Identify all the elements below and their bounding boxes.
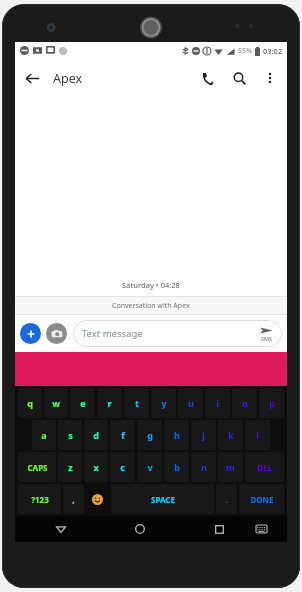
staticText: 55% [238,46,252,56]
button[interactable]: o [232,388,257,418]
staticText: 03:02 [263,46,283,56]
staticText: e [80,397,86,409]
staticText: j [202,429,205,441]
button[interactable]: SPACE [111,484,214,514]
staticText: ?123 [31,494,49,505]
staticText: z [68,461,73,473]
staticText: x [93,461,99,473]
button[interactable]: t [124,388,149,418]
button[interactable]: g [137,420,162,450]
button[interactable]: w [44,388,68,418]
button[interactable]: DEL [245,452,284,482]
staticText: p [269,397,275,409]
button[interactable]: a [32,420,56,450]
staticText: o [242,397,248,409]
staticText: c [120,461,125,473]
button[interactable]: Switch keyboard [249,517,273,541]
staticText: v [147,461,153,473]
button[interactable]: p [259,388,284,418]
button[interactable]: Home [128,517,152,541]
button[interactable]: m [218,452,243,482]
staticText: b [174,461,180,473]
staticText: n [201,461,207,473]
button[interactable]: x [84,452,108,482]
button[interactable]: h [164,420,189,450]
staticText: r [107,397,112,409]
staticText: k [228,429,234,441]
staticText: y [161,397,167,409]
staticText: Saturday • 04:28 [122,280,180,290]
button[interactable]: l [245,420,270,450]
staticText: . [225,493,228,505]
button[interactable]: ?123 [18,484,61,514]
staticText: SPACE [151,494,175,505]
button[interactable]: CAPS [18,452,56,482]
button[interactable]: . [216,484,237,514]
staticText: SMS [261,335,273,342]
button[interactable]: v [137,452,162,482]
button[interactable]: f [110,420,135,450]
staticText: l [256,429,259,441]
staticText: s [68,429,73,441]
staticText: i [216,397,219,409]
button[interactable]: i [205,388,230,418]
button[interactable]: Add attachment [20,323,41,344]
button[interactable]: Search [223,62,255,94]
button[interactable]: q [18,388,42,418]
button[interactable]: n [191,452,216,482]
button[interactable]: y [151,388,176,418]
button[interactable]: Call [191,62,223,94]
staticText: h [174,429,180,441]
button[interactable]: Back [49,517,73,541]
button[interactable]: d [84,420,108,450]
button[interactable]: u [178,388,203,418]
staticText: g [147,429,153,441]
button[interactable]: , [63,484,84,514]
button[interactable]: k [218,420,243,450]
button[interactable]: Camera [46,323,67,344]
button[interactable]: Recent apps [207,517,231,541]
button[interactable]: Text message [73,320,282,347]
button[interactable]: Emoji [85,484,110,514]
staticText: CAPS [27,462,48,473]
button[interactable]: c [110,452,135,482]
staticText: d [93,429,99,441]
button[interactable]: z [58,452,82,482]
button[interactable]: r [97,388,122,418]
button[interactable]: e [70,388,95,418]
button[interactable]: b [164,452,189,482]
staticText: m [226,461,235,473]
button[interactable]: Back [15,61,49,95]
staticText: a [41,429,47,441]
button[interactable]: DONE [239,484,284,514]
button[interactable]: More options [255,63,285,93]
staticText: Conversation with Apex [112,301,190,311]
staticText: f [121,429,125,441]
button[interactable]: s [58,420,82,450]
staticText: w [52,397,60,409]
staticText: , [72,493,75,505]
staticText: Text message [82,327,143,340]
staticText: q [27,397,33,409]
staticText: Apex [53,70,83,87]
staticText: t [135,397,139,409]
staticText: DONE [250,494,274,505]
staticText: u [188,397,194,409]
button[interactable]: j [191,420,216,450]
staticText: DEL [257,462,272,473]
